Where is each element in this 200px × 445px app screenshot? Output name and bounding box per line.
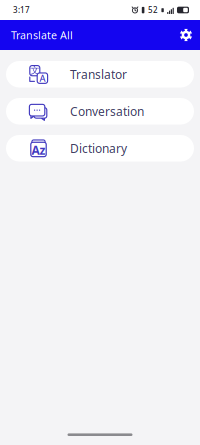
staticText: A [39, 72, 45, 84]
staticText: 文 [30, 65, 39, 76]
button[interactable]: Settings [175, 22, 197, 48]
button[interactable]: Az [6, 135, 194, 161]
staticText: Dictionary [70, 140, 127, 156]
staticText: Conversation [70, 103, 144, 119]
staticText: 52 [148, 5, 158, 15]
staticText: 3:17 [13, 5, 30, 15]
button[interactable]: 文 [6, 61, 194, 87]
staticText: Translator [70, 66, 127, 82]
staticText: Az [31, 142, 45, 158]
button[interactable]: Conversation [6, 98, 194, 124]
staticText: Translate All [11, 28, 73, 42]
